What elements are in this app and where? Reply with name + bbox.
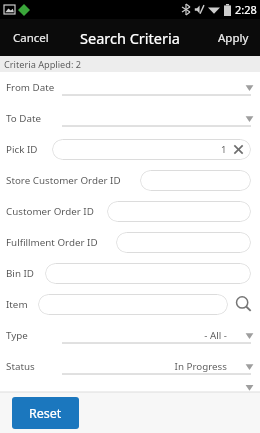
button[interactable]: Bin ID xyxy=(0,258,260,289)
staticText: Customer Order ID xyxy=(6,205,94,218)
staticText: Criteria Applied: 2 xyxy=(4,58,82,71)
button[interactable]: Search item xyxy=(232,293,255,316)
staticText: 2:28 xyxy=(235,2,257,17)
button[interactable]: Cancel xyxy=(0,19,62,56)
button[interactable]: Type xyxy=(0,320,260,351)
staticText: In Progress xyxy=(62,360,227,373)
staticText: 1 xyxy=(221,143,227,156)
staticText: Item xyxy=(6,298,28,311)
button[interactable]: Pick ID xyxy=(0,134,260,165)
button[interactable]: Reset xyxy=(12,397,79,429)
button[interactable]: Apply xyxy=(206,19,260,56)
button[interactable]: Status xyxy=(0,351,260,382)
staticText: Status xyxy=(6,360,35,373)
staticText: Apply xyxy=(218,30,249,46)
button[interactable]: Customer Order ID xyxy=(0,196,260,227)
staticText: Pick ID xyxy=(6,143,38,156)
staticText: Bin ID xyxy=(6,267,34,280)
other: Clear Pick ID xyxy=(233,144,244,155)
button[interactable]: Item xyxy=(0,289,260,320)
staticText: Fulfillment Order ID xyxy=(6,236,98,249)
staticText: Store Customer Order ID xyxy=(6,174,121,187)
staticText: Cancel xyxy=(13,30,49,46)
button[interactable]: Fulfillment Order ID xyxy=(0,227,260,258)
staticText: From Date xyxy=(6,81,55,94)
staticText: Search Criteria xyxy=(80,28,180,48)
staticText: To Date xyxy=(6,112,41,125)
button[interactable]: From Date xyxy=(0,72,260,103)
staticText: Reset xyxy=(29,405,62,422)
button[interactable]: Store Customer Order ID xyxy=(0,165,260,196)
button[interactable]: To Date xyxy=(0,103,260,134)
staticText: Type xyxy=(6,329,28,342)
staticText: - All - xyxy=(62,329,227,342)
